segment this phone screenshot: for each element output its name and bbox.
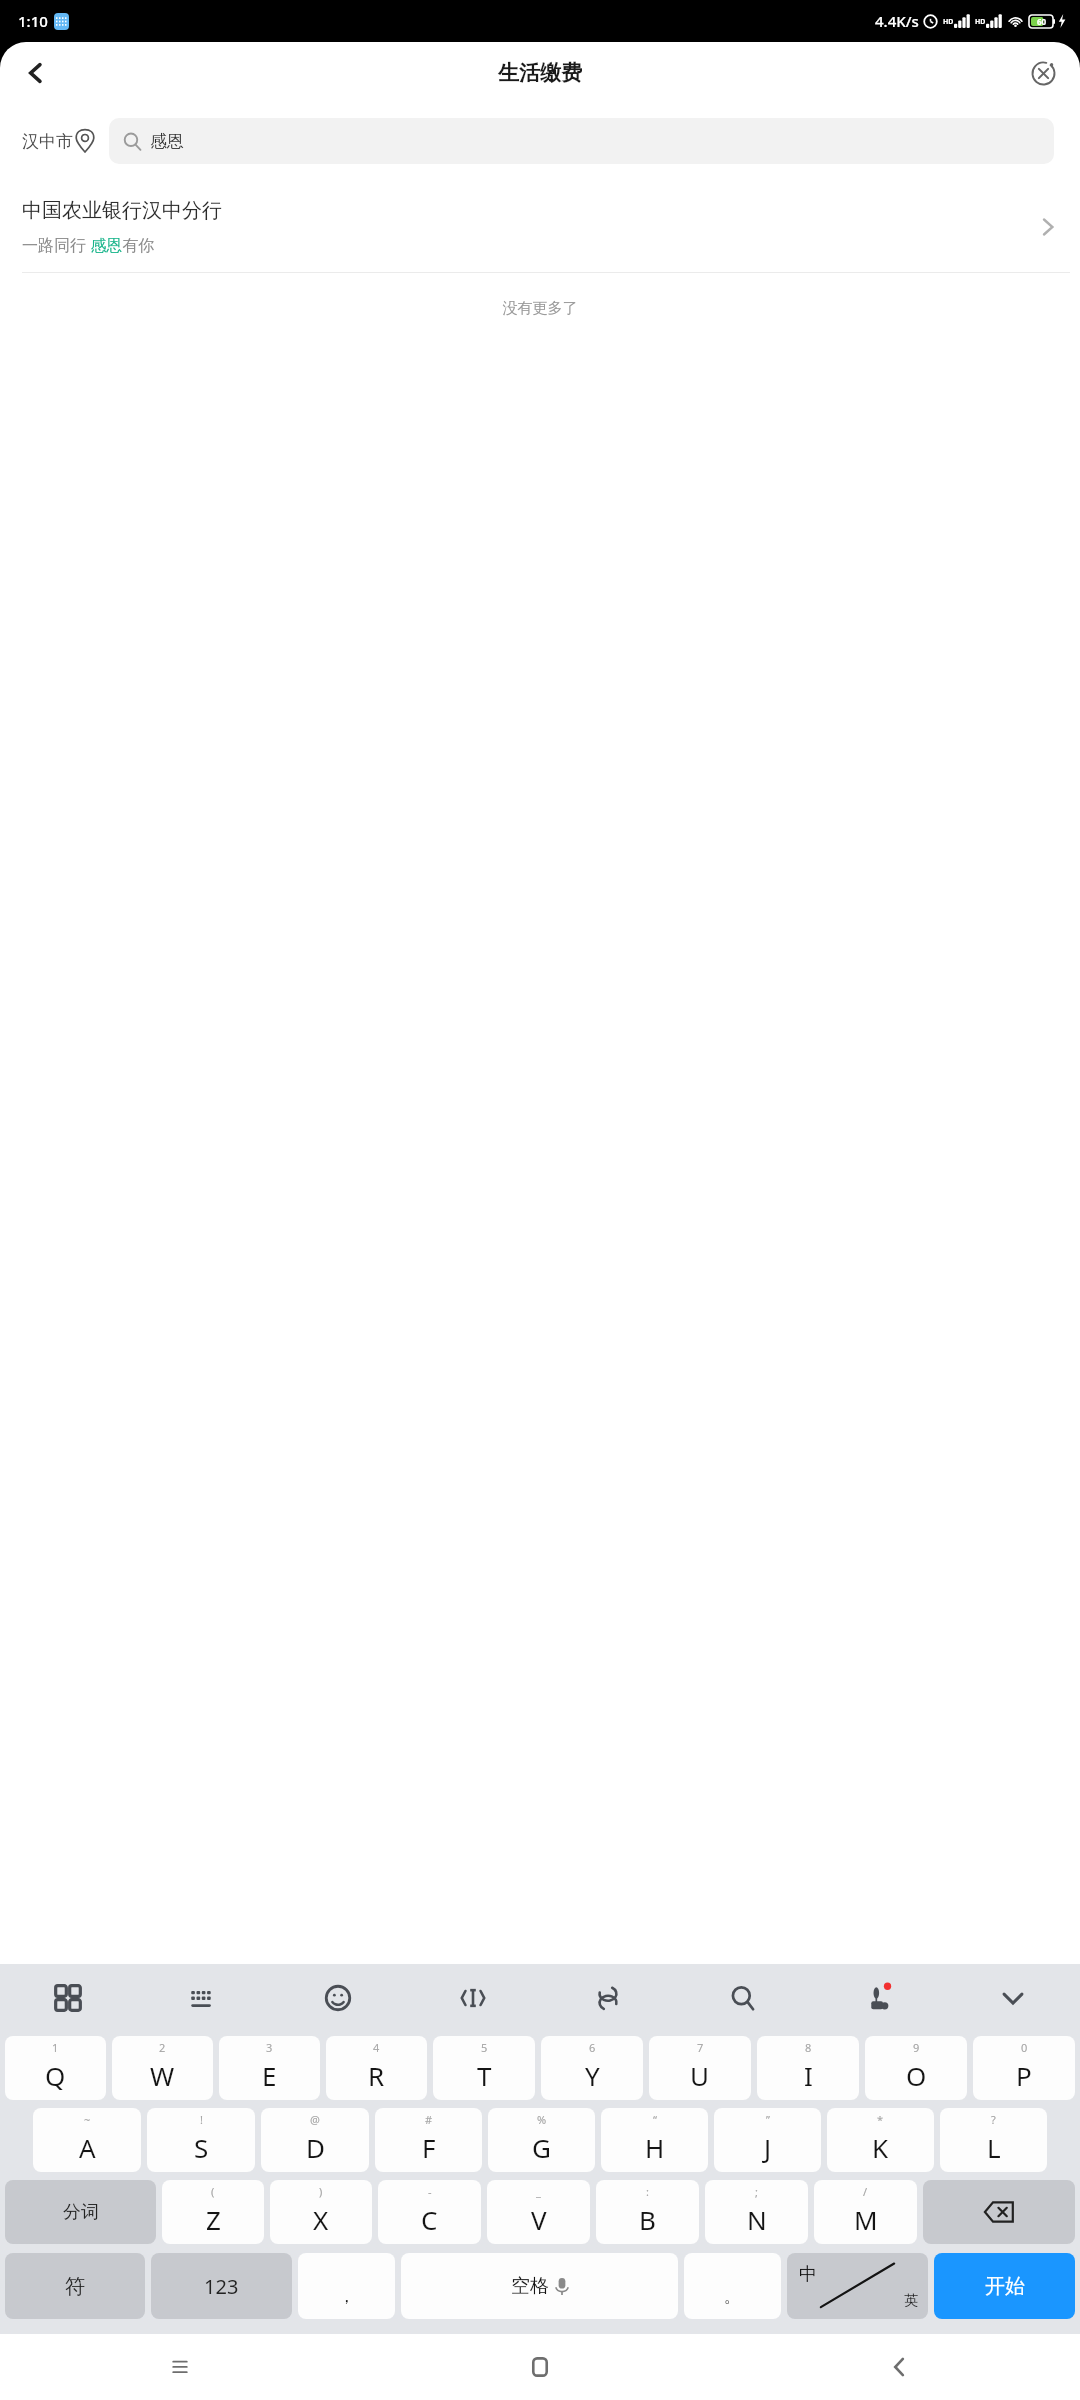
- staticText: 1:10: [18, 11, 48, 31]
- button[interactable]: 6: [541, 2036, 643, 2100]
- staticText: O: [906, 2058, 927, 2093]
- staticText: ;: [755, 2184, 758, 2199]
- button[interactable]: Back: [10, 47, 62, 99]
- staticText: @: [310, 2112, 320, 2127]
- staticText: 5: [481, 2040, 488, 2055]
- button[interactable]: 123: [151, 2253, 292, 2319]
- staticText: 英: [904, 2292, 918, 2310]
- staticText: Y: [585, 2058, 600, 2093]
- staticText: 生活缴费: [498, 60, 582, 86]
- staticText: J: [764, 2130, 772, 2165]
- button[interactable]: _: [487, 2180, 590, 2244]
- button[interactable]: 中国农业银行汉中分行: [0, 180, 1080, 273]
- button[interactable]: ”: [714, 2108, 821, 2172]
- button[interactable]: Clip: [540, 1964, 675, 2032]
- staticText: ~: [84, 2112, 91, 2127]
- staticText: T: [477, 2058, 492, 2093]
- button[interactable]: ?: [940, 2108, 1047, 2172]
- button[interactable]: *: [827, 2108, 934, 2172]
- staticText: 。: [724, 2286, 741, 2307]
- button[interactable]: @: [261, 2108, 369, 2172]
- button[interactable]: 汉中市: [22, 129, 95, 153]
- staticText: 符: [65, 2274, 85, 2299]
- button[interactable]: 5: [433, 2036, 535, 2100]
- button[interactable]: Close: [1020, 50, 1066, 96]
- staticText: 分词: [63, 2201, 99, 2224]
- button[interactable]: Backspace: [923, 2180, 1075, 2244]
- button[interactable]: 0: [973, 2036, 1075, 2100]
- button[interactable]: 感恩: [109, 118, 1054, 164]
- button[interactable]: 3: [219, 2036, 320, 2100]
- button[interactable]: 分词: [5, 2180, 156, 2244]
- staticText: 空格: [511, 2274, 549, 2298]
- staticText: 中国农业银行汉中分行: [22, 198, 222, 223]
- button[interactable]: -: [378, 2180, 481, 2244]
- staticText: S: [194, 2130, 209, 2165]
- staticText: I: [804, 2058, 813, 2093]
- staticText: N: [747, 2202, 767, 2237]
- button[interactable]: 空格: [401, 2253, 678, 2319]
- staticText: Q: [45, 2058, 66, 2093]
- button[interactable]: :: [596, 2180, 699, 2244]
- staticText: 感恩: [150, 131, 184, 152]
- staticText: X: [313, 2202, 329, 2237]
- button[interactable]: 开始: [934, 2253, 1075, 2319]
- button[interactable]: 9: [865, 2036, 967, 2100]
- button[interactable]: Ad: [810, 1964, 945, 2032]
- staticText: 一路同行 感恩有你: [22, 234, 155, 256]
- button[interactable]: ，: [298, 2253, 395, 2319]
- staticText: 没有更多了: [0, 299, 1080, 318]
- button[interactable]: 8: [757, 2036, 859, 2100]
- staticText: “: [653, 2112, 657, 2127]
- staticText: ): [319, 2184, 323, 2199]
- button[interactable]: %: [488, 2108, 595, 2172]
- button[interactable]: ~: [33, 2108, 141, 2172]
- button[interactable]: Keyboard: [135, 1964, 270, 2032]
- button[interactable]: Hide keyboard: [945, 1964, 1080, 2032]
- staticText: B: [639, 2202, 656, 2237]
- button[interactable]: !: [147, 2108, 255, 2172]
- staticText: ，: [338, 2286, 355, 2307]
- button[interactable]: Recents: [0, 2334, 360, 2400]
- staticText: HD: [943, 17, 954, 27]
- staticText: 2: [159, 2040, 166, 2055]
- staticText: 6: [589, 2040, 596, 2055]
- staticText: Z: [206, 2202, 221, 2237]
- button[interactable]: ): [270, 2180, 372, 2244]
- button[interactable]: /: [814, 2180, 917, 2244]
- staticText: ”: [766, 2112, 770, 2127]
- staticText: #: [425, 2112, 433, 2127]
- staticText: 中: [799, 2263, 817, 2286]
- staticText: 0: [1021, 2040, 1028, 2055]
- staticText: R: [368, 2058, 385, 2093]
- staticText: 9: [913, 2040, 920, 2055]
- staticText: D: [306, 2130, 325, 2165]
- staticText: !: [200, 2112, 203, 2127]
- staticText: K: [872, 2130, 889, 2165]
- button[interactable]: #: [375, 2108, 482, 2172]
- button[interactable]: Emoji: [270, 1964, 405, 2032]
- button[interactable]: 2: [112, 2036, 213, 2100]
- staticText: V: [531, 2202, 547, 2237]
- button[interactable]: 。: [684, 2253, 781, 2319]
- staticText: %: [537, 2112, 547, 2127]
- button[interactable]: Grid: [0, 1964, 135, 2032]
- button[interactable]: 中英切换: [787, 2253, 928, 2319]
- button[interactable]: 4: [326, 2036, 427, 2100]
- button[interactable]: ;: [705, 2180, 808, 2244]
- staticText: :: [646, 2184, 649, 2199]
- staticText: *: [877, 2112, 884, 2127]
- button[interactable]: Search: [675, 1964, 810, 2032]
- button[interactable]: Home: [360, 2334, 720, 2400]
- button[interactable]: Text cursor: [405, 1964, 540, 2032]
- staticText: (: [211, 2184, 215, 2199]
- button[interactable]: 符: [5, 2253, 145, 2319]
- button[interactable]: 7: [649, 2036, 751, 2100]
- button[interactable]: (: [162, 2180, 264, 2244]
- staticText: /: [863, 2184, 868, 2199]
- button[interactable]: 1: [5, 2036, 106, 2100]
- staticText: F: [422, 2130, 436, 2165]
- button[interactable]: “: [601, 2108, 708, 2172]
- staticText: L: [987, 2130, 1001, 2165]
- button[interactable]: Back: [720, 2334, 1080, 2400]
